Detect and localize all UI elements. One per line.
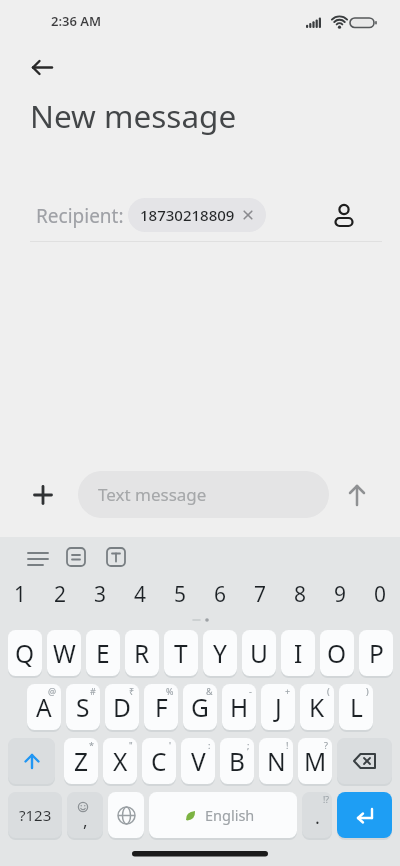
staticText: 1 xyxy=(14,580,27,609)
staticText: L xyxy=(350,691,363,724)
button[interactable]: Y xyxy=(203,630,237,676)
button[interactable]: 8 xyxy=(284,578,316,610)
staticText: S xyxy=(76,691,90,724)
staticText: ( xyxy=(327,685,330,697)
button[interactable]: , xyxy=(67,792,103,838)
staticText: # xyxy=(90,685,96,697)
button[interactable]: L xyxy=(339,684,373,730)
button[interactable] xyxy=(337,792,392,838)
staticText: 0 xyxy=(374,580,387,609)
staticText: 6 xyxy=(214,580,227,609)
button[interactable]: W xyxy=(47,630,81,676)
staticText: A xyxy=(36,691,52,724)
staticText: Recipient: xyxy=(36,203,124,229)
button[interactable]: Z xyxy=(64,738,98,784)
button[interactable]: V xyxy=(181,738,215,784)
staticText: 18730218809 xyxy=(140,205,235,225)
staticText: % xyxy=(166,685,174,697)
staticText: 8 xyxy=(294,580,307,609)
button[interactable]: S xyxy=(66,684,100,730)
staticText: English xyxy=(205,805,255,825)
staticText: & xyxy=(206,685,213,697)
button[interactable]: H xyxy=(222,684,256,730)
button[interactable]: N xyxy=(259,738,293,784)
staticText: 5 xyxy=(174,580,187,609)
staticText: K xyxy=(309,691,325,724)
staticText: C xyxy=(151,745,167,778)
button[interactable]: English xyxy=(149,792,297,838)
staticText: P xyxy=(369,637,384,670)
button[interactable] xyxy=(337,738,392,784)
button[interactable]: ?123 xyxy=(8,792,62,838)
button[interactable]: 3 xyxy=(84,578,116,610)
staticText: ; xyxy=(247,739,250,751)
staticText: * xyxy=(89,739,94,751)
staticText: ! xyxy=(286,739,289,751)
staticText: X xyxy=(113,745,128,778)
staticText: U xyxy=(250,637,268,670)
button[interactable]: C xyxy=(142,738,176,784)
button[interactable]: 5 xyxy=(164,578,196,610)
staticText: Text message xyxy=(98,483,207,506)
staticText: @ xyxy=(48,685,57,697)
staticText: J xyxy=(275,691,282,724)
button[interactable]: A xyxy=(27,684,61,730)
button[interactable]: J xyxy=(261,684,295,730)
button[interactable]: 7 xyxy=(244,578,276,610)
button[interactable]: . xyxy=(302,792,332,838)
staticText: ? xyxy=(324,739,328,751)
button[interactable]: 6 xyxy=(204,578,236,610)
button[interactable] xyxy=(340,476,374,512)
staticText: " xyxy=(129,739,133,751)
staticText: . xyxy=(315,805,320,830)
staticText: M xyxy=(304,745,327,778)
staticText: I xyxy=(294,637,303,670)
staticText: 7 xyxy=(254,580,267,609)
button[interactable]: I xyxy=(281,630,315,676)
button[interactable] xyxy=(26,478,60,512)
staticText: T xyxy=(174,637,188,670)
button[interactable]: T xyxy=(164,630,198,676)
button[interactable]: 9 xyxy=(324,578,356,610)
button[interactable]: 0 xyxy=(364,578,396,610)
staticText: D xyxy=(113,691,131,724)
button[interactable]: 4 xyxy=(124,578,156,610)
staticText: Y xyxy=(213,637,227,670)
staticText: Z xyxy=(74,745,89,778)
staticText: 2:36 AM xyxy=(51,12,102,30)
button[interactable]: G xyxy=(183,684,217,730)
button[interactable]: F xyxy=(144,684,178,730)
button[interactable]: R xyxy=(125,630,159,676)
button[interactable]: P xyxy=(359,630,393,676)
staticText: , xyxy=(83,809,88,832)
button[interactable] xyxy=(24,50,60,84)
button[interactable]: U xyxy=(242,630,276,676)
button[interactable]: Text message xyxy=(78,471,329,518)
staticText: : xyxy=(208,739,211,751)
staticText: F xyxy=(155,691,168,724)
staticText: H xyxy=(230,691,249,724)
staticText: 9 xyxy=(334,580,347,609)
button[interactable] xyxy=(327,198,361,232)
button[interactable] xyxy=(108,792,144,838)
staticText: V xyxy=(191,745,206,778)
button[interactable]: 1 xyxy=(4,578,36,610)
button[interactable] xyxy=(8,738,55,784)
button[interactable]: E xyxy=(86,630,120,676)
button[interactable]: 2 xyxy=(44,578,76,610)
button[interactable]: B xyxy=(220,738,254,784)
button[interactable]: M xyxy=(298,738,332,784)
staticText: O xyxy=(327,637,347,670)
staticText: 3 xyxy=(94,580,107,609)
button[interactable]: K xyxy=(300,684,334,730)
button[interactable]: Q xyxy=(8,630,42,676)
button[interactable] xyxy=(97,543,135,571)
button[interactable]: X xyxy=(103,738,137,784)
button[interactable]: 18730218809 xyxy=(128,198,266,232)
button[interactable]: O xyxy=(320,630,354,676)
button[interactable]: D xyxy=(105,684,139,730)
staticText: B xyxy=(229,745,245,778)
staticText: R xyxy=(134,637,150,670)
button[interactable] xyxy=(57,543,95,571)
staticText: Q xyxy=(15,637,35,670)
